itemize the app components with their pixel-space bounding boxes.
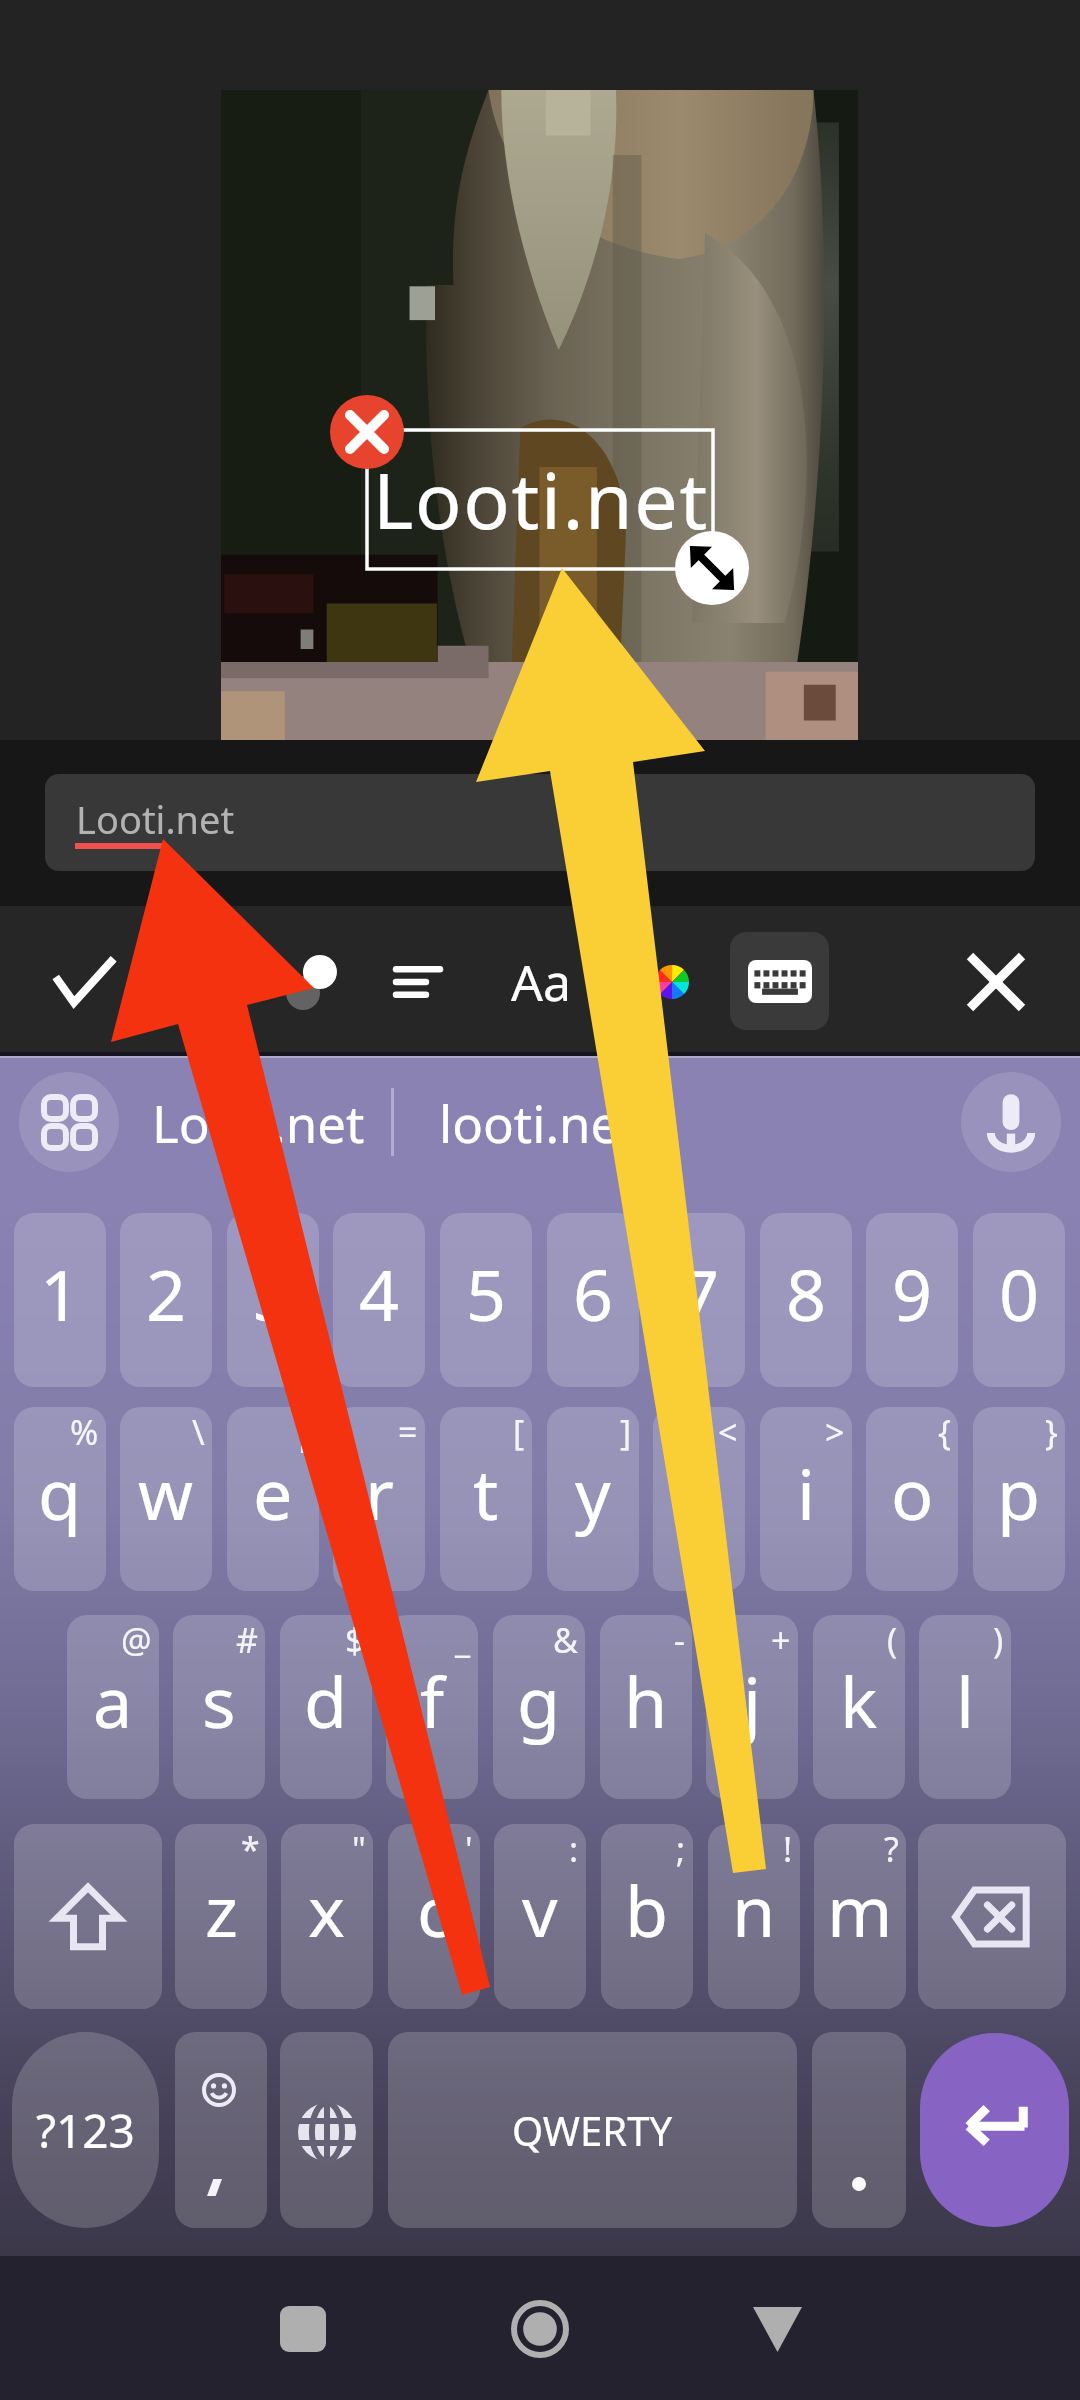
button[interactable]: Text colour xyxy=(638,948,706,1016)
button[interactable]: y xyxy=(547,1407,639,1591)
staticText: c xyxy=(417,1862,451,1957)
staticText: Aa xyxy=(511,948,571,1016)
button[interactable]: v xyxy=(494,1824,586,2009)
button[interactable]: f xyxy=(386,1615,478,1799)
button[interactable]: Clipboard xyxy=(19,1072,119,1172)
staticText: ? xyxy=(884,1826,899,1872)
button[interactable]: Back xyxy=(722,2274,832,2384)
staticText: & xyxy=(553,1617,578,1663)
button[interactable] xyxy=(812,2032,906,2228)
button[interactable]: Change keyboard language xyxy=(280,2032,373,2228)
button[interactable]: 3 xyxy=(227,1213,319,1387)
button[interactable]: Emoji xyxy=(175,2032,267,2228)
button[interactable]: 0 xyxy=(973,1213,1065,1387)
button[interactable]: Voice input xyxy=(961,1072,1061,1172)
button[interactable]: 2 xyxy=(120,1213,212,1387)
button[interactable]: o xyxy=(866,1407,958,1591)
staticText: a xyxy=(93,1653,133,1748)
staticText: x xyxy=(308,1862,346,1957)
staticText: _ xyxy=(455,1617,471,1663)
staticText: Looti.net xyxy=(76,793,235,845)
button[interactable]: c xyxy=(388,1824,480,2009)
button[interactable]: u xyxy=(653,1407,745,1591)
staticText: w xyxy=(138,1445,194,1540)
button[interactable]: d xyxy=(280,1615,372,1799)
button[interactable]: ?123 xyxy=(12,2032,159,2228)
staticText: 6 xyxy=(573,1246,614,1341)
staticText: ] xyxy=(620,1409,632,1455)
button[interactable]: Looti.net xyxy=(152,1074,382,1170)
staticText: 8 xyxy=(786,1246,827,1341)
button[interactable]: e xyxy=(227,1407,319,1591)
button[interactable]: q xyxy=(14,1407,106,1591)
staticText: 7 xyxy=(679,1246,720,1341)
button[interactable]: w xyxy=(120,1407,212,1591)
button[interactable]: b xyxy=(601,1824,693,2009)
staticText: e xyxy=(253,1445,293,1540)
button[interactable]: z xyxy=(175,1824,267,2009)
button[interactable]: Home xyxy=(485,2274,595,2384)
button[interactable]: Resize text xyxy=(675,531,749,605)
staticText: + xyxy=(771,1617,791,1663)
button[interactable]: Alignment xyxy=(372,936,464,1028)
button[interactable]: 5 xyxy=(440,1213,532,1387)
staticText: = xyxy=(398,1409,418,1455)
button[interactable]: p xyxy=(973,1407,1065,1591)
staticText: o xyxy=(891,1445,934,1540)
button[interactable]: 7 xyxy=(653,1213,745,1387)
button[interactable]: Backspace xyxy=(918,1824,1066,2009)
staticText: r xyxy=(365,1445,394,1540)
staticText: Looti.net xyxy=(373,447,709,552)
button[interactable]: x xyxy=(281,1824,373,2009)
button[interactable]: i xyxy=(760,1407,852,1591)
button[interactable]: looti.ne xyxy=(439,1074,654,1170)
button[interactable]: 6 xyxy=(547,1213,639,1387)
staticText: s xyxy=(202,1653,236,1748)
button[interactable]: Delete text xyxy=(330,395,404,469)
button[interactable]: Recents xyxy=(248,2274,358,2384)
staticText: 9 xyxy=(892,1246,933,1341)
staticText: Looti.net xyxy=(152,1088,365,1157)
staticText: 5 xyxy=(466,1246,507,1341)
button[interactable]: Aa xyxy=(491,936,591,1028)
staticText: > xyxy=(825,1409,845,1455)
button[interactable]: t xyxy=(440,1407,532,1591)
button[interactable]: 1 xyxy=(14,1213,106,1387)
staticText: 2 xyxy=(146,1246,187,1341)
staticText: 1 xyxy=(40,1246,81,1341)
staticText: QWERTY xyxy=(512,2103,673,2157)
button[interactable]: a xyxy=(67,1615,159,1799)
button[interactable]: Keyboard xyxy=(730,932,829,1030)
button[interactable]: g xyxy=(493,1615,585,1799)
staticText: d xyxy=(304,1653,348,1748)
staticText: ! xyxy=(783,1826,793,1872)
button[interactable]: k xyxy=(813,1615,905,1799)
button[interactable]: l xyxy=(919,1615,1011,1799)
button[interactable]: n xyxy=(708,1824,800,2009)
button[interactable]: 4 xyxy=(333,1213,425,1387)
button[interactable]: h xyxy=(600,1615,692,1799)
staticText: % xyxy=(70,1409,99,1455)
staticText: : xyxy=(569,1826,579,1872)
staticText: | xyxy=(293,1409,312,1455)
staticText: * xyxy=(241,1826,260,1872)
button[interactable]: m xyxy=(814,1824,906,2009)
staticText: ; xyxy=(676,1826,686,1872)
staticText: h xyxy=(624,1653,668,1748)
button[interactable]: QWERTY xyxy=(388,2032,797,2228)
button[interactable]: Shift xyxy=(14,1824,162,2009)
button[interactable]: Opacity xyxy=(258,936,350,1028)
staticText: " xyxy=(352,1826,366,1872)
button[interactable]: r xyxy=(333,1407,425,1591)
button[interactable]: Done xyxy=(38,936,130,1028)
staticText: q xyxy=(38,1445,82,1540)
button[interactable]: Close xyxy=(952,938,1040,1026)
staticText: g xyxy=(517,1653,561,1748)
button[interactable]: j xyxy=(706,1615,798,1799)
button[interactable]: 8 xyxy=(760,1213,852,1387)
button[interactable]: Enter xyxy=(920,2033,1069,2227)
staticText: 4 xyxy=(359,1246,400,1341)
button[interactable]: s xyxy=(173,1615,265,1799)
button[interactable]: Looti.net xyxy=(45,774,1035,871)
button[interactable]: 9 xyxy=(866,1213,958,1387)
